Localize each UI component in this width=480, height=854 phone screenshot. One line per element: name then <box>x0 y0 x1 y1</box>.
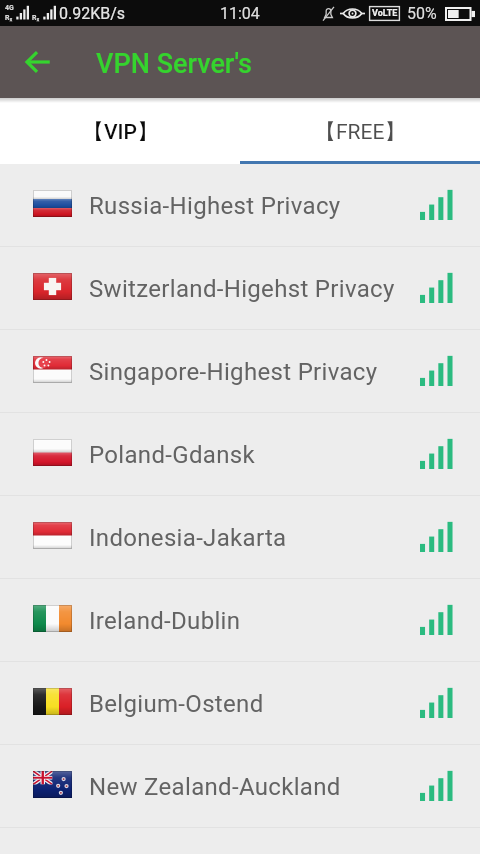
button[interactable]: Singapore-Highest Privacy <box>0 330 480 412</box>
button[interactable]: New Zealand-Auckland <box>0 745 480 827</box>
staticText: Poland-Gdansk <box>89 441 255 469</box>
staticText: 【VIP】 <box>83 119 158 145</box>
staticText: Singapore-Highest Privacy <box>89 358 378 386</box>
button[interactable]: Russia-Highest Privacy <box>0 164 480 246</box>
staticText: Indonesia-Jakarta <box>89 524 287 552</box>
staticText: Switzerland-Higehst Privacy <box>89 275 395 303</box>
staticText: Rₓ <box>5 14 13 22</box>
staticText: 11:04 <box>220 4 260 23</box>
button[interactable]: Ireland-Dublin <box>0 579 480 661</box>
staticText: Ireland-Dublin <box>89 607 241 635</box>
button[interactable]: Belgium-Ostend <box>0 662 480 744</box>
button[interactable]: 【VIP】 <box>0 103 240 161</box>
staticText: Russia-Highest Privacy <box>89 192 341 220</box>
staticText: 【FREE】 <box>315 119 406 145</box>
staticText: VPN Server's <box>96 48 252 80</box>
button[interactable]: 【FREE】 <box>240 103 480 161</box>
staticText: 4G <box>5 4 14 12</box>
button[interactable]: Switzerland-Higehst Privacy <box>0 247 480 329</box>
button[interactable]: Indonesia-Jakarta <box>0 496 480 578</box>
button[interactable]: Poland-Gdansk <box>0 413 480 495</box>
button[interactable]: Back <box>0 26 62 98</box>
staticText: 50% <box>407 4 437 23</box>
staticText: Rₓ <box>32 14 40 22</box>
staticText: 0.92KB/s <box>59 4 126 23</box>
staticText: Belgium-Ostend <box>89 690 264 718</box>
staticText: VoLTE <box>372 8 398 19</box>
staticText: New Zealand-Auckland <box>89 773 341 801</box>
